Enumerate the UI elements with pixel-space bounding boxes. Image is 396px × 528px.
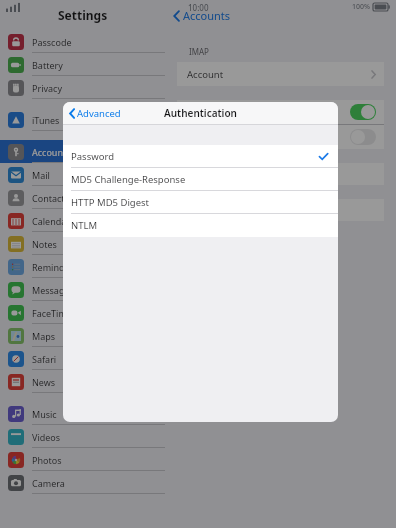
button[interactable]: Advanced bbox=[67, 105, 123, 122]
staticText: Account bbox=[187, 68, 224, 81]
button[interactable]: FaceTime bbox=[0, 301, 165, 324]
button[interactable]: Passcode bbox=[0, 30, 165, 53]
button[interactable]: Camera bbox=[0, 471, 165, 494]
staticText: Maps bbox=[32, 330, 56, 342]
button[interactable]: Music bbox=[0, 402, 165, 425]
button[interactable]: HTTP MD5 Digest bbox=[63, 191, 338, 214]
staticText: Battery bbox=[32, 59, 63, 71]
button[interactable]: Maps bbox=[0, 324, 165, 347]
staticText: IMAP bbox=[189, 46, 209, 57]
staticText: iTunes bbox=[32, 114, 60, 126]
staticText: Accounts bbox=[32, 146, 71, 158]
staticText: Privacy bbox=[32, 82, 63, 94]
staticText: Settings bbox=[58, 7, 108, 23]
button[interactable]: Mail bbox=[0, 163, 165, 186]
staticText: Accounts bbox=[183, 8, 231, 23]
button[interactable]: Accounts bbox=[0, 140, 165, 163]
staticText: Advanced bbox=[77, 107, 121, 120]
staticText: HTTP MD5 Digest bbox=[71, 196, 150, 209]
staticText: Password bbox=[71, 150, 114, 163]
staticText: FaceTime bbox=[32, 307, 72, 319]
button[interactable]: Notes bbox=[0, 232, 165, 255]
button[interactable]: Password bbox=[63, 145, 338, 168]
button[interactable]: Contacts bbox=[0, 186, 165, 209]
staticText: Camera bbox=[32, 477, 65, 489]
button[interactable]: Photos bbox=[0, 448, 165, 471]
button[interactable]: MD5 Challenge-Response bbox=[63, 168, 338, 191]
staticText: Music bbox=[32, 408, 57, 420]
staticText: Photos bbox=[32, 454, 62, 466]
staticText: 100% bbox=[352, 2, 370, 12]
button[interactable] bbox=[177, 199, 384, 221]
staticText: MD5 Challenge-Response bbox=[71, 173, 186, 186]
button[interactable]: Privacy bbox=[0, 76, 165, 99]
staticText: Contacts bbox=[32, 192, 69, 204]
staticText: Safari bbox=[32, 353, 57, 365]
button[interactable]: Mail on bbox=[350, 104, 376, 120]
button[interactable]: News bbox=[0, 370, 165, 393]
other: Selected bbox=[319, 153, 328, 160]
button[interactable]: Notes bbox=[177, 125, 384, 149]
button[interactable]: iTunes bbox=[0, 108, 165, 131]
button[interactable]: Accounts bbox=[171, 6, 233, 25]
staticText: Calendar bbox=[32, 215, 70, 227]
button[interactable]: Battery bbox=[0, 53, 165, 76]
staticText: Authentication bbox=[164, 106, 237, 120]
button[interactable]: Videos bbox=[0, 425, 165, 448]
button[interactable]: Notes off bbox=[350, 129, 376, 145]
staticText: Reminders bbox=[32, 261, 78, 273]
button[interactable]: Reminders bbox=[0, 255, 165, 278]
staticText: NTLM bbox=[71, 219, 98, 232]
staticText: Mail bbox=[32, 169, 50, 181]
button[interactable]: Account bbox=[177, 62, 384, 86]
staticText: Messages bbox=[32, 284, 74, 296]
button[interactable]: Calendar bbox=[0, 209, 165, 232]
staticText: Passcode bbox=[32, 36, 72, 48]
button[interactable]: Safari bbox=[0, 347, 165, 370]
button[interactable]: NTLM bbox=[63, 214, 338, 237]
button[interactable] bbox=[177, 163, 384, 185]
staticText: Mail bbox=[187, 106, 206, 119]
staticText: News bbox=[32, 376, 56, 388]
staticText: Videos bbox=[32, 431, 61, 443]
button[interactable]: Messages bbox=[0, 278, 165, 301]
staticText: 10:00 bbox=[188, 2, 209, 13]
button[interactable]: Mail bbox=[177, 100, 384, 124]
staticText: Notes bbox=[32, 238, 57, 250]
